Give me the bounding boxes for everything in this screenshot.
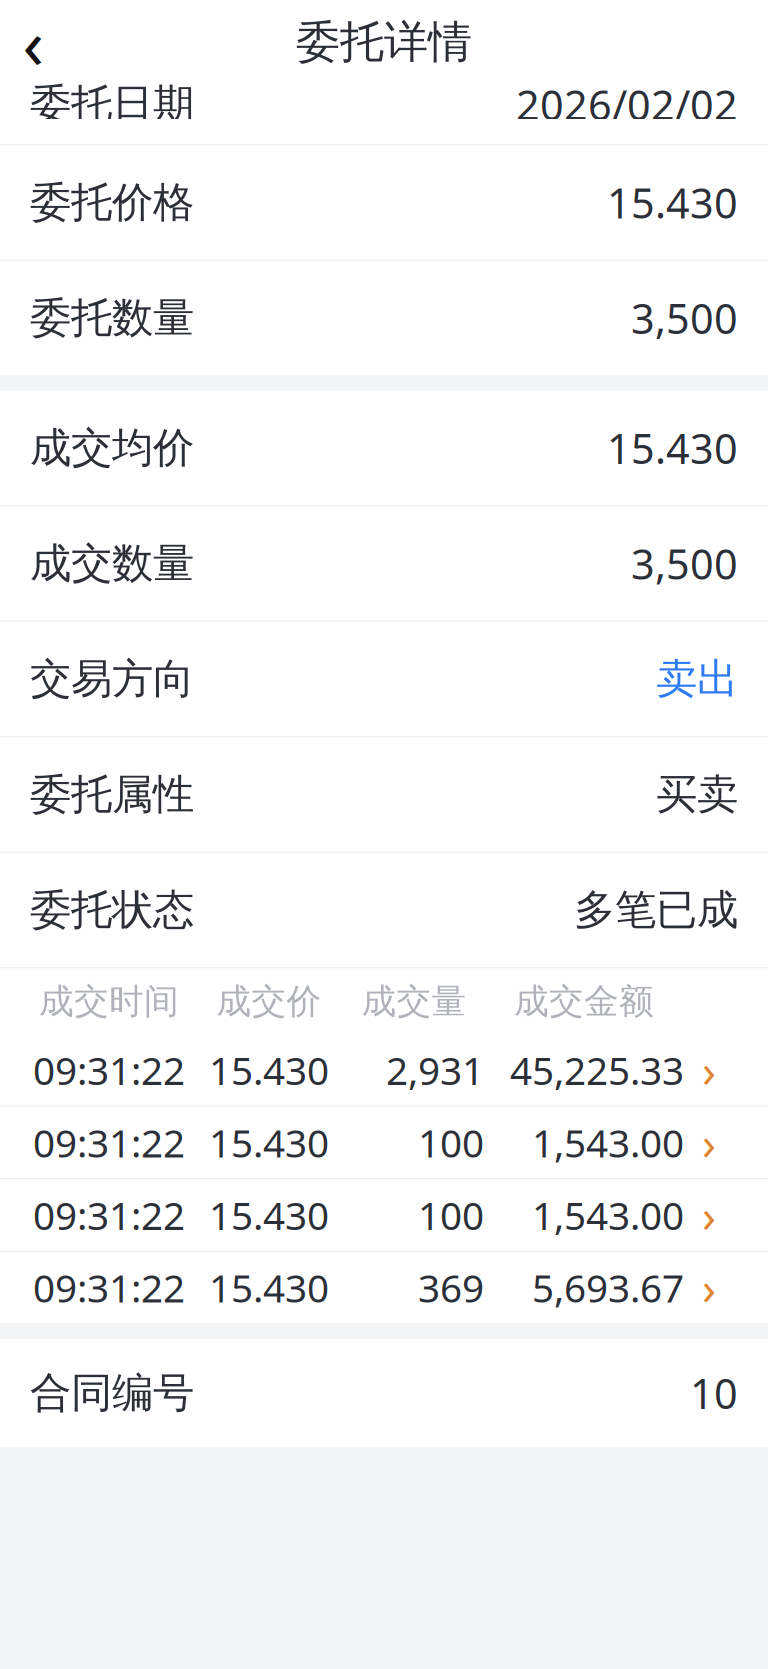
staticText: › bbox=[702, 1040, 716, 1100]
staticText: 成交量 bbox=[361, 980, 466, 1023]
staticText: 100 bbox=[418, 1117, 484, 1168]
staticText: 委托详情 bbox=[296, 15, 472, 69]
staticText: 15.430 bbox=[607, 175, 738, 230]
staticText: 3,500 bbox=[631, 291, 738, 345]
button[interactable]: 09:31:22 bbox=[0, 1107, 768, 1178]
button[interactable]: 09:31:22 bbox=[0, 1252, 768, 1323]
staticText: 成交数量 bbox=[30, 538, 194, 589]
staticText: 3,500 bbox=[631, 536, 738, 591]
staticText: 合同编号 bbox=[30, 1368, 194, 1418]
staticText: 15.430 bbox=[209, 1189, 329, 1241]
staticText: 10 bbox=[690, 1366, 738, 1420]
staticText: 交易方向 bbox=[30, 654, 194, 704]
staticText: 45,225.33 bbox=[510, 1044, 684, 1096]
staticText: 2026/02/02 bbox=[516, 77, 738, 132]
button[interactable]: 09:31:22 bbox=[0, 1034, 768, 1105]
staticText: 成交时间 bbox=[39, 980, 179, 1023]
staticText: 15.430 bbox=[209, 1262, 329, 1313]
staticText: 委托价格 bbox=[30, 177, 194, 228]
staticText: 委托状态 bbox=[30, 885, 194, 935]
staticText: 100 bbox=[418, 1189, 484, 1241]
staticText: 15.430 bbox=[607, 421, 738, 475]
staticText: 委托日期 bbox=[30, 79, 194, 130]
button[interactable]: Back bbox=[0, 7, 66, 77]
staticText: 1,543.00 bbox=[532, 1189, 684, 1241]
staticText: › bbox=[702, 1112, 716, 1173]
staticText: 15.430 bbox=[209, 1117, 329, 1168]
staticText: 成交均价 bbox=[30, 423, 194, 473]
staticText: 委托数量 bbox=[30, 293, 194, 343]
staticText: 09:31:22 bbox=[33, 1117, 185, 1168]
staticText: 委托属性 bbox=[30, 769, 194, 820]
staticText: 卖出 bbox=[656, 654, 738, 704]
staticText: 1,543.00 bbox=[532, 1117, 684, 1168]
staticText: ‹ bbox=[22, 0, 43, 88]
staticText: 5,693.67 bbox=[532, 1262, 684, 1313]
staticText: 买卖 bbox=[656, 769, 738, 820]
staticText: › bbox=[702, 1257, 716, 1318]
staticText: 成交价 bbox=[216, 980, 321, 1023]
staticText: 09:31:22 bbox=[33, 1189, 185, 1241]
staticText: 多笔已成 bbox=[574, 885, 738, 935]
staticText: 09:31:22 bbox=[33, 1262, 185, 1313]
staticText: 成交金额 bbox=[514, 980, 654, 1023]
button[interactable]: 09:31:22 bbox=[0, 1179, 768, 1250]
staticText: 2,931 bbox=[386, 1044, 484, 1096]
staticText: 15.430 bbox=[209, 1044, 329, 1096]
staticText: 09:31:22 bbox=[33, 1044, 185, 1096]
staticText: 369 bbox=[418, 1262, 484, 1313]
staticText: › bbox=[702, 1185, 716, 1245]
